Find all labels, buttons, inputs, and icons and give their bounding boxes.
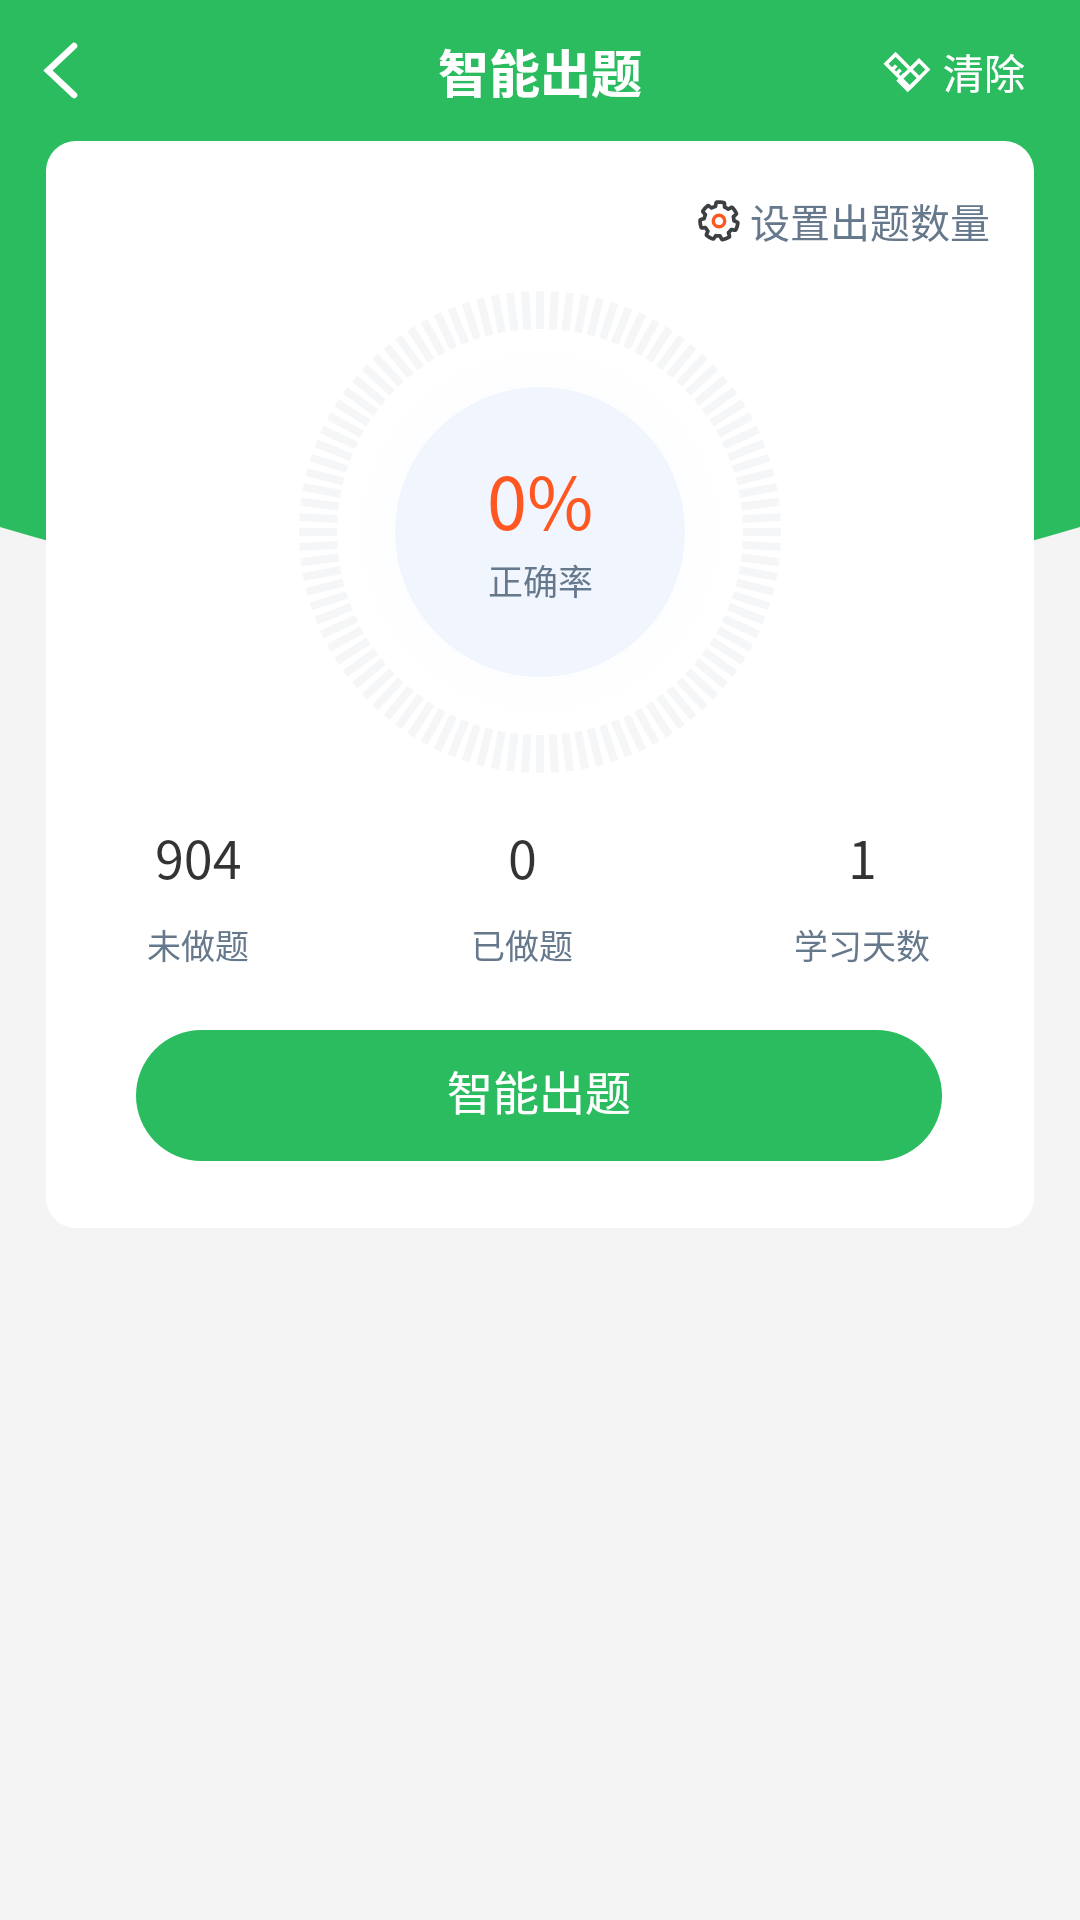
staticText: 未做题 (147, 920, 249, 969)
staticText: 学习天数 (794, 920, 930, 969)
staticText: 清除 (943, 41, 1025, 100)
staticText: 正确率 (488, 554, 594, 605)
staticText: 智能出题 (447, 1057, 631, 1124)
button[interactable]: Back (0, 0, 120, 141)
button[interactable]: 1 (732, 819, 992, 969)
staticText: 设置出题数量 (750, 192, 990, 250)
button[interactable]: Clear (881, 31, 1031, 110)
staticText: 904 (155, 819, 242, 894)
button[interactable]: 智能出题 (136, 1030, 942, 1161)
button[interactable]: 904 (68, 819, 328, 969)
button[interactable]: 0 (392, 819, 652, 969)
staticText: 0 (508, 819, 537, 894)
other: Clear (887, 50, 929, 92)
button[interactable]: 设置出题数量 (697, 192, 990, 250)
staticText: 0% (487, 446, 594, 550)
staticText: 1 (848, 819, 877, 894)
staticText: 智能出题 (438, 34, 643, 108)
staticText: 已做题 (471, 920, 573, 969)
